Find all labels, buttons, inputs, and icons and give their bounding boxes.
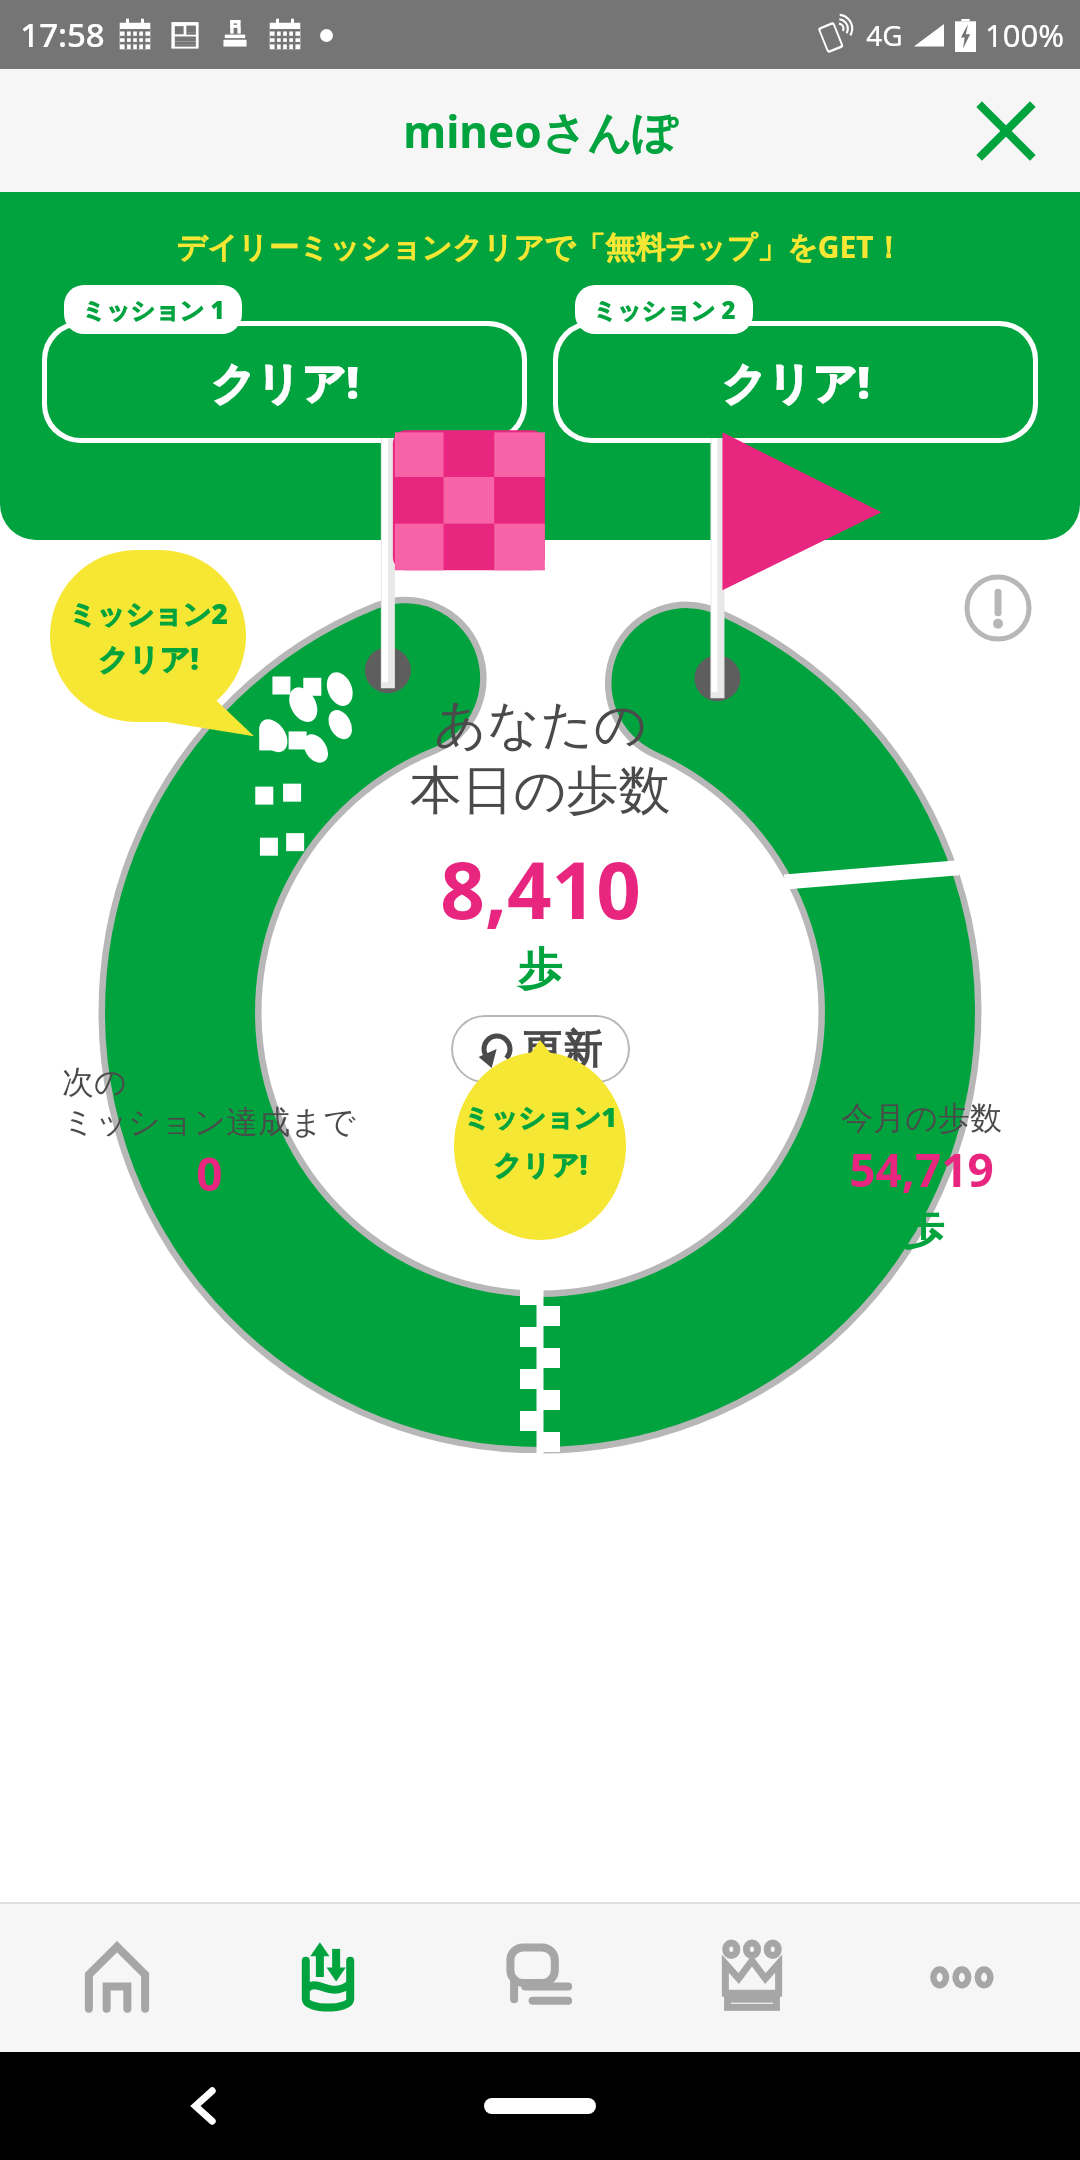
staticText: ミッション 2: [592, 293, 736, 326]
staticText: デイリーミッションクリアで「無料チップ」をGET！: [176, 226, 904, 267]
staticText: 17:58: [20, 12, 105, 57]
staticText: ミッション1: [463, 1098, 617, 1135]
button[interactable]: クリア!: [42, 285, 527, 443]
staticText: 8,410: [440, 836, 641, 942]
staticText: 今月の歩数: [841, 1098, 1002, 1138]
button[interactable]: ミッション2: [50, 550, 246, 722]
staticText: クリア!: [98, 638, 199, 679]
button[interactable]: クリア!: [553, 285, 1038, 443]
staticText: mineoさんぽ: [403, 101, 677, 161]
staticText: 0: [196, 1142, 223, 1205]
staticText: クリア!: [211, 352, 359, 412]
staticText: 54,719: [849, 1138, 994, 1201]
staticText: 本日の歩数: [409, 758, 671, 824]
staticText: 次の: [62, 1062, 127, 1102]
staticText: あなたの: [434, 692, 647, 758]
staticText: 歩: [900, 1201, 944, 1256]
button[interactable]: ランキング: [657, 1902, 847, 2052]
staticText: ミッション達成まで: [62, 1102, 356, 1142]
staticText: 歩: [518, 942, 562, 997]
button[interactable]: ホーム: [22, 1902, 212, 2052]
staticText: 100%: [985, 14, 1064, 56]
button[interactable]: 更新: [451, 1015, 630, 1083]
staticText: クリア!: [722, 352, 870, 412]
button[interactable]: その他: [868, 1902, 1058, 2052]
staticText: 更新: [522, 1024, 602, 1074]
button[interactable]: データ: [233, 1902, 423, 2052]
staticText: ミッション2: [68, 594, 228, 632]
button[interactable]: 閉じる: [962, 87, 1050, 175]
button[interactable]: 説明: [958, 568, 1038, 648]
staticText: 4G: [866, 16, 903, 54]
staticText: ミッション 1: [81, 293, 225, 326]
staticText: クリア!: [493, 1145, 588, 1183]
button[interactable]: コミュニティ: [445, 1902, 635, 2052]
